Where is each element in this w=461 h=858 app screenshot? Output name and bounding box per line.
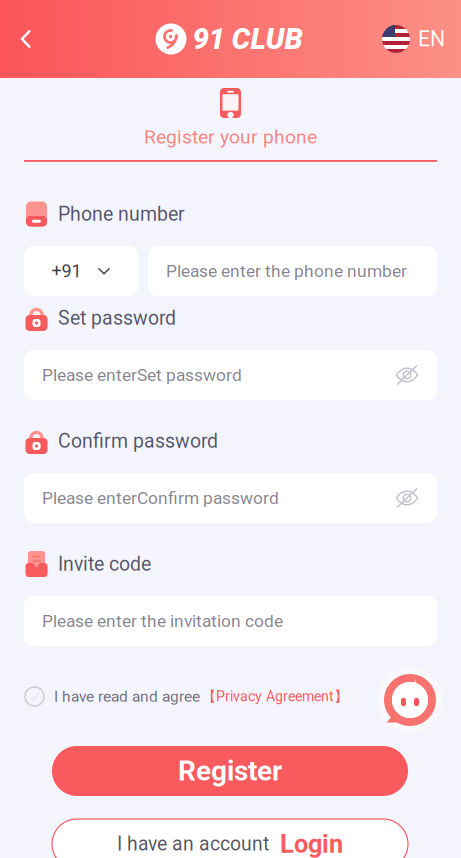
button[interactable]: Please enterConfirm password — [24, 473, 437, 523]
staticText: I have read and agree — [54, 687, 200, 705]
staticText: Register — [178, 755, 282, 787]
button[interactable]: Please enterSet password — [24, 350, 437, 400]
staticText: Invite code — [58, 553, 151, 575]
button[interactable]: Back — [0, 11, 52, 67]
staticText: Please enter the invitation code — [42, 611, 283, 631]
staticText: Please enterConfirm password — [42, 488, 279, 508]
staticText: +91 — [51, 260, 81, 282]
button[interactable]: Agree to the privacy agreement — [24, 686, 45, 707]
button[interactable]: I have an account — [52, 819, 408, 858]
button[interactable]: EN — [382, 11, 461, 67]
staticText: Please enterSet password — [42, 365, 242, 385]
button[interactable]: Customer service — [378, 668, 442, 732]
button[interactable]: +91 — [24, 246, 138, 296]
staticText: I have an account — [117, 833, 269, 855]
button[interactable]: 【Privacy Agreement】 — [200, 688, 348, 705]
staticText: Confirm password — [58, 430, 218, 452]
staticText: Please enter the phone number — [166, 261, 407, 281]
button[interactable]: Please enter the invitation code — [24, 596, 437, 646]
button[interactable]: Please enter the phone number — [148, 246, 437, 296]
staticText: Phone number — [58, 203, 185, 225]
staticText: 【Privacy Agreement】 — [202, 688, 348, 705]
staticText: Login — [280, 829, 343, 858]
staticText: Register your phone — [144, 126, 317, 148]
button[interactable]: Register — [52, 746, 408, 796]
staticText: EN — [418, 26, 445, 51]
staticText: 91 CLUB — [192, 22, 302, 56]
staticText: Set password — [58, 307, 176, 329]
